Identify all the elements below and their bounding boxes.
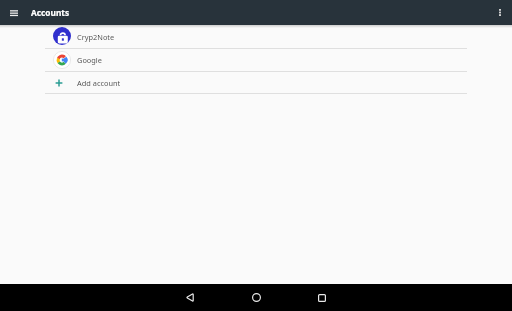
button[interactable]	[228, 284, 284, 311]
button[interactable]	[6, 5, 22, 21]
staticText: Google	[77, 55, 102, 65]
button[interactable]	[492, 5, 507, 20]
button[interactable]: Cryp2Note	[0, 25, 512, 48]
staticText: Accounts	[31, 7, 70, 18]
button[interactable]: Add account	[0, 72, 512, 93]
button[interactable]: Google	[0, 49, 512, 71]
staticText: Cryp2Note	[77, 32, 115, 42]
staticText: Add account	[77, 78, 121, 88]
button[interactable]	[294, 284, 350, 311]
button[interactable]	[162, 284, 218, 311]
